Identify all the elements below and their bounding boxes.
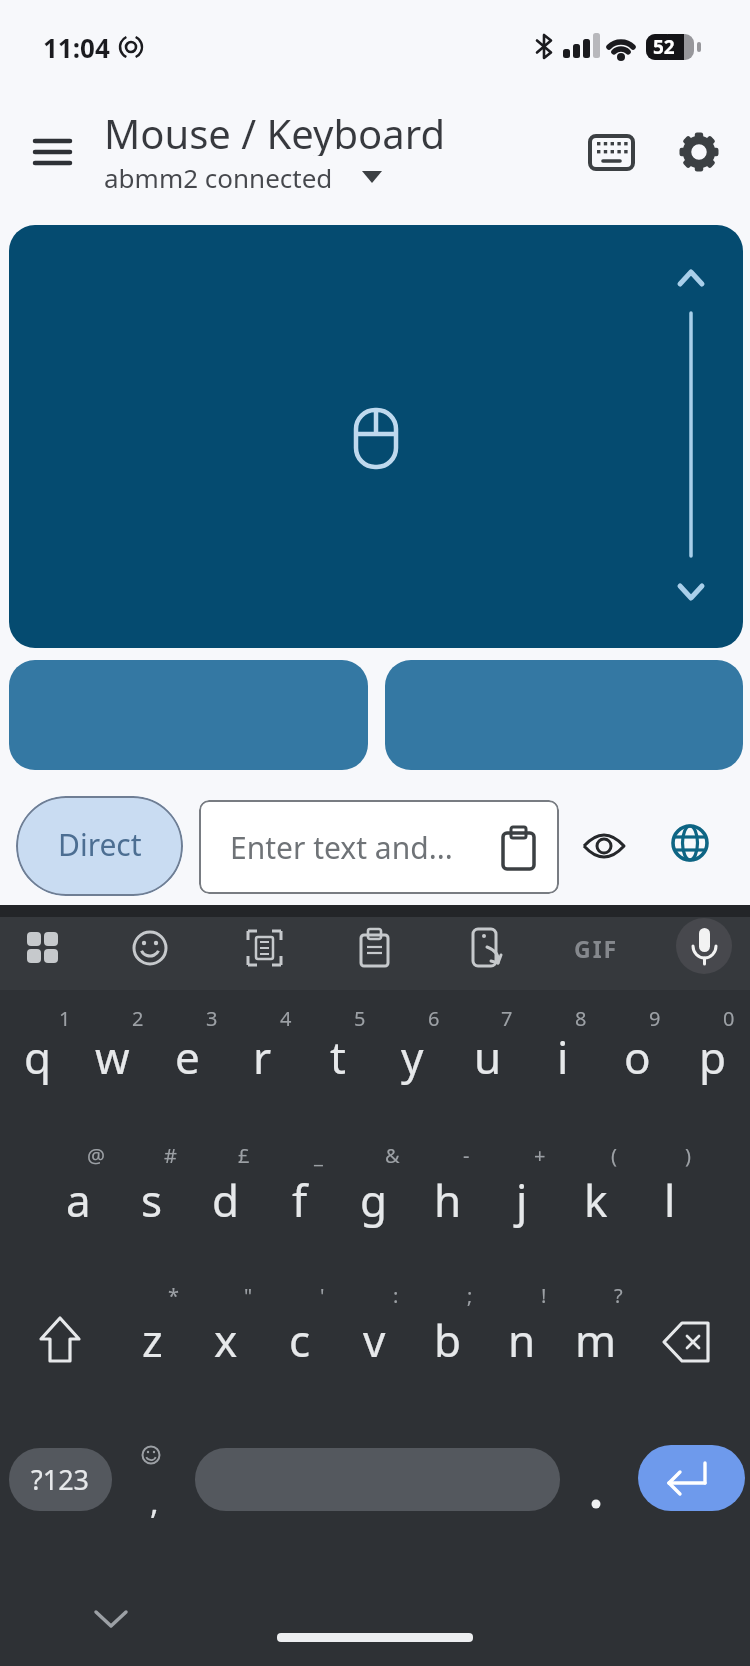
staticText: ) [685, 1142, 691, 1169]
staticText: 8 [575, 1005, 587, 1032]
staticText: r [253, 1027, 272, 1087]
staticText: 9 [649, 1005, 661, 1032]
staticText: abmm2 connected [104, 160, 333, 194]
staticText: k [584, 1170, 608, 1230]
staticText: v [363, 1310, 386, 1370]
staticText: b [434, 1310, 462, 1370]
staticText: 5 [354, 1005, 366, 1032]
staticText: ! [541, 1282, 547, 1309]
staticText: z [142, 1310, 163, 1370]
staticText: a [66, 1170, 91, 1230]
staticText: f [292, 1170, 308, 1230]
staticText: 1 [59, 1005, 71, 1032]
staticText: 2 [132, 1005, 144, 1032]
staticText: Mouse / Keyboard [104, 106, 446, 156]
staticText: e [175, 1027, 200, 1087]
staticText: - [463, 1142, 470, 1169]
staticText: o [624, 1027, 651, 1087]
staticText: ' [320, 1282, 325, 1309]
staticText: : [393, 1282, 399, 1309]
staticText: & [385, 1142, 400, 1169]
staticText: q [24, 1027, 52, 1087]
staticText: p [699, 1027, 727, 1087]
staticText: d [212, 1170, 240, 1230]
staticText: 3 [206, 1005, 218, 1032]
staticText: g [360, 1170, 388, 1230]
staticText: @ [87, 1142, 105, 1169]
staticText: ? [614, 1282, 623, 1309]
staticText: GIF [574, 933, 619, 964]
staticText: ?123 [31, 1461, 90, 1498]
staticText: y [401, 1027, 424, 1087]
staticText: ( [611, 1142, 617, 1169]
staticText: w [95, 1027, 130, 1087]
staticText: 6 [428, 1005, 440, 1032]
staticText: " [244, 1282, 253, 1309]
staticText: c [289, 1310, 311, 1370]
staticText: i [557, 1027, 569, 1087]
staticText: # [164, 1142, 177, 1169]
staticText: ; [467, 1282, 473, 1309]
staticText: _ [314, 1142, 323, 1169]
staticText: 7 [501, 1005, 513, 1032]
staticText: 0 [723, 1005, 735, 1032]
staticText: £ [238, 1142, 250, 1169]
staticText: m [575, 1310, 617, 1370]
staticText: s [141, 1170, 163, 1230]
staticText: Enter text and... [230, 827, 453, 868]
staticText: 11:04 [43, 30, 110, 60]
staticText: n [508, 1310, 536, 1370]
staticText: Direct [58, 824, 142, 865]
staticText: 4 [280, 1005, 292, 1032]
staticText: 52 [653, 34, 675, 60]
staticText: t [330, 1027, 346, 1087]
staticText: j [516, 1170, 528, 1230]
staticText: x [214, 1310, 238, 1370]
staticText: h [434, 1170, 462, 1230]
staticText: l [664, 1170, 676, 1230]
staticText: u [474, 1027, 502, 1087]
staticText: + [534, 1142, 546, 1169]
staticText: , [150, 1480, 159, 1524]
staticText: * [168, 1282, 180, 1309]
